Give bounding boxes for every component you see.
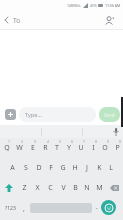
button[interactable]: A bbox=[6, 158, 19, 178]
staticText: , bbox=[23, 204, 25, 214]
staticText: B bbox=[73, 183, 78, 193]
staticText: To bbox=[13, 16, 21, 25]
staticText: L bbox=[109, 163, 113, 173]
staticText: J bbox=[86, 163, 88, 173]
staticText: 4 bbox=[47, 139, 50, 144]
button[interactable]: O bbox=[99, 138, 111, 158]
staticText: H bbox=[72, 163, 78, 173]
button[interactable]: R bbox=[39, 138, 51, 158]
button[interactable]: Type... bbox=[19, 107, 96, 122]
staticText: 8 bbox=[95, 139, 98, 144]
button[interactable] bbox=[101, 200, 116, 215]
staticText: Z bbox=[22, 183, 27, 193]
button[interactable]: K bbox=[93, 158, 105, 178]
button[interactable]: U bbox=[75, 138, 87, 158]
staticText: 148KB/s bbox=[67, 3, 81, 8]
button[interactable]: I bbox=[87, 138, 99, 158]
button[interactable]: M bbox=[93, 178, 105, 198]
staticText: 7 bbox=[83, 139, 86, 144]
button[interactable]: C bbox=[44, 178, 57, 198]
button[interactable]: S bbox=[19, 158, 32, 178]
staticText: Send bbox=[104, 112, 115, 118]
button[interactable]: L bbox=[105, 158, 117, 178]
staticText: Type... bbox=[25, 111, 42, 118]
button[interactable]: B bbox=[69, 178, 81, 198]
staticText: 1 bbox=[8, 139, 11, 144]
staticText: W bbox=[16, 143, 23, 153]
staticText: 6 bbox=[71, 139, 74, 144]
staticText: N bbox=[84, 183, 90, 193]
staticText: . bbox=[96, 202, 98, 212]
staticText: 2 bbox=[21, 139, 24, 144]
staticText: 9 bbox=[107, 139, 110, 144]
staticText: D bbox=[36, 163, 42, 173]
staticText: 3 bbox=[34, 139, 37, 144]
button[interactable]: Send bbox=[99, 107, 120, 122]
staticText: M bbox=[96, 183, 103, 193]
button[interactable]: Z bbox=[18, 178, 31, 198]
button[interactable] bbox=[105, 178, 123, 198]
button[interactable] bbox=[4, 17, 10, 23]
staticText: Q bbox=[4, 143, 10, 153]
staticText: C bbox=[48, 183, 53, 193]
staticText: V bbox=[61, 183, 66, 193]
staticText: U bbox=[78, 143, 84, 153]
staticText: ?123 bbox=[5, 205, 16, 212]
staticText: T bbox=[55, 143, 59, 153]
staticText: 5 bbox=[59, 139, 62, 144]
staticText: K bbox=[97, 163, 102, 173]
button[interactable]: J bbox=[81, 158, 93, 178]
button[interactable]: T bbox=[51, 138, 63, 158]
button[interactable]: P bbox=[111, 138, 123, 158]
button[interactable] bbox=[111, 127, 121, 137]
button[interactable]: D bbox=[32, 158, 45, 178]
staticText: S bbox=[24, 163, 28, 173]
button[interactable] bbox=[103, 14, 115, 26]
staticText: Y bbox=[67, 143, 71, 153]
button[interactable]: E bbox=[26, 138, 39, 158]
button[interactable] bbox=[0, 178, 18, 198]
button[interactable]: N bbox=[81, 178, 93, 198]
button[interactable]: F bbox=[45, 158, 57, 178]
button[interactable]: X bbox=[31, 178, 44, 198]
staticText: O bbox=[102, 143, 108, 153]
staticText: F bbox=[49, 163, 53, 173]
staticText: 0 bbox=[119, 139, 122, 144]
button[interactable]: ?123 bbox=[2, 198, 18, 218]
button[interactable]: Q bbox=[0, 138, 13, 158]
staticText: I bbox=[92, 143, 95, 153]
staticText: G bbox=[60, 163, 66, 173]
staticText: 45% bbox=[90, 3, 97, 8]
staticText: R bbox=[43, 143, 48, 153]
button[interactable] bbox=[5, 109, 16, 120]
button[interactable]: V bbox=[57, 178, 69, 198]
button[interactable]: Y bbox=[63, 138, 75, 158]
staticText: X bbox=[35, 183, 40, 193]
staticText: 11:56 AM bbox=[105, 3, 121, 8]
staticText: A bbox=[10, 163, 15, 173]
button[interactable]: H bbox=[69, 158, 81, 178]
staticText: E bbox=[31, 143, 35, 153]
button[interactable]: W bbox=[13, 138, 26, 158]
staticText: P bbox=[115, 143, 120, 153]
button[interactable]: G bbox=[57, 158, 69, 178]
